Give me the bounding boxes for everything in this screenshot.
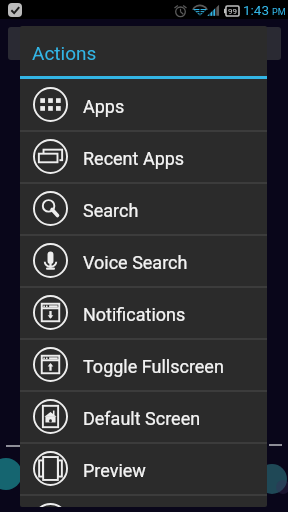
button[interactable]: Toggle Fullscreen xyxy=(20,339,267,391)
button[interactable]: Voice Search xyxy=(20,235,267,287)
other: Wi-Fi xyxy=(192,4,208,16)
button[interactable]: Actions xyxy=(20,26,267,76)
staticText: Preview xyxy=(83,460,146,481)
staticText: 1:43 xyxy=(243,2,270,18)
other: Download complete xyxy=(8,3,22,17)
button[interactable]: Overview xyxy=(20,495,267,507)
staticText: Notifications xyxy=(83,304,186,325)
button[interactable]: Apps xyxy=(20,79,267,131)
staticText: Actions xyxy=(32,42,97,64)
staticText: Apps xyxy=(83,96,125,117)
staticText: Recent Apps xyxy=(83,148,185,169)
other: Mobile signal xyxy=(207,4,220,16)
button[interactable]: Search xyxy=(20,183,267,235)
button[interactable]: Notifications xyxy=(20,287,267,339)
button[interactable]: Preview xyxy=(20,443,267,495)
staticText: Search xyxy=(83,200,139,221)
staticText: Toggle Fullscreen xyxy=(83,356,224,377)
button[interactable]: Recent Apps xyxy=(20,131,267,183)
staticText: PM xyxy=(272,7,286,18)
staticText: Voice Search xyxy=(83,252,188,273)
staticText: Default Screen xyxy=(83,408,201,429)
staticText: 99 xyxy=(228,7,237,16)
other: Battery xyxy=(224,6,239,16)
button[interactable]: Default Screen xyxy=(20,391,267,443)
other: Alarm set xyxy=(174,4,187,17)
